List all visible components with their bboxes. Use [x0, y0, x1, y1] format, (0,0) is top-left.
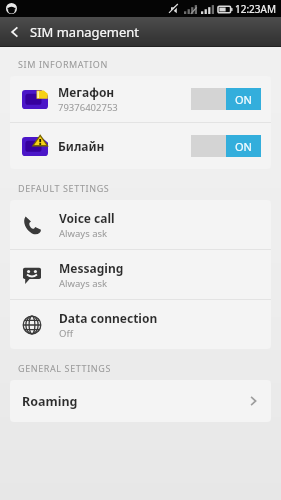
staticText: Always ask: [59, 227, 108, 240]
staticText: DEFAULT SETTINGS: [18, 182, 110, 194]
staticText: Off: [59, 327, 73, 340]
staticText: 12:23AM: [235, 2, 277, 16]
button[interactable]: Back: [0, 17, 30, 47]
staticText: GENERAL SETTINGS: [18, 362, 111, 374]
button[interactable]: Toggle SIM: [191, 88, 261, 110]
button[interactable]: Messaging: [10, 250, 271, 299]
button[interactable]: Мегафон: [10, 76, 271, 122]
staticText: Data connection: [59, 310, 158, 326]
staticText: ON: [235, 92, 252, 107]
staticText: Voice call: [59, 210, 115, 226]
staticText: ON: [235, 139, 252, 154]
staticText: SIM INFORMATION: [18, 58, 108, 70]
staticText: Always ask: [59, 277, 108, 290]
button[interactable]: Билайн: [10, 123, 271, 169]
button[interactable]: Data connection: [10, 300, 271, 349]
button[interactable]: Voice call: [10, 200, 271, 249]
button[interactable]: Toggle SIM: [191, 135, 261, 157]
button[interactable]: Roaming: [10, 380, 271, 422]
staticText: Мегафон: [58, 84, 115, 100]
staticText: Messaging: [59, 260, 124, 276]
staticText: Roaming: [22, 393, 247, 410]
staticText: 79376402753: [58, 101, 118, 114]
staticText: Билайн: [58, 138, 105, 154]
staticText: SIM management: [30, 23, 140, 41]
